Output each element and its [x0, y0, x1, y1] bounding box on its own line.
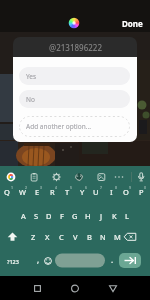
staticText: Done: [122, 18, 143, 29]
staticText: No: [26, 95, 35, 104]
staticText: I: [110, 187, 113, 197]
staticText: Y: [80, 187, 85, 197]
staticText: Add another option...: [26, 122, 91, 131]
staticText: E: [35, 187, 40, 197]
staticText: P: [139, 187, 144, 197]
button[interactable]: [105, 280, 121, 296]
staticText: U: [93, 187, 99, 197]
staticText: 0: [144, 185, 147, 190]
staticText: 3: [40, 185, 43, 190]
staticText: 1: [11, 185, 14, 190]
staticText: ?123: [7, 258, 19, 265]
staticText: 9: [129, 185, 132, 190]
staticText: O: [123, 187, 129, 197]
staticText: Q: [4, 187, 10, 197]
staticText: .: [111, 254, 114, 265]
staticText: Z: [31, 232, 36, 242]
staticText: S: [34, 211, 39, 221]
staticText: 4: [55, 185, 58, 190]
button[interactable]: [119, 253, 141, 268]
staticText: 6: [85, 185, 88, 190]
staticText: 8: [115, 185, 118, 190]
staticText: Yes: [26, 72, 37, 81]
staticText: T: [65, 187, 70, 197]
staticText: 7: [100, 185, 103, 190]
button[interactable]: Yes: [19, 67, 130, 85]
staticText: W: [19, 187, 26, 197]
staticText: ,: [37, 254, 40, 265]
staticText: K: [112, 211, 117, 221]
staticText: D: [46, 211, 52, 221]
staticText: @2131896222: [49, 42, 102, 53]
staticText: N: [100, 232, 106, 242]
staticText: R: [50, 187, 55, 197]
staticText: M: [114, 232, 121, 242]
staticText: 2: [25, 185, 28, 190]
staticText: F: [60, 211, 64, 221]
staticText: X: [45, 232, 50, 242]
button[interactable]: [67, 280, 83, 296]
button[interactable]: [55, 253, 105, 268]
button[interactable]: [27, 280, 43, 296]
staticText: A: [21, 211, 26, 221]
staticText: C: [59, 232, 64, 242]
staticText: L: [125, 211, 129, 221]
staticText: J: [100, 211, 103, 221]
button[interactable]: Done: [118, 15, 146, 31]
staticText: G: [72, 211, 78, 221]
button[interactable]: No: [19, 90, 130, 108]
staticText: 5: [70, 185, 73, 190]
staticText: B: [87, 232, 92, 242]
staticText: V: [73, 232, 78, 242]
button[interactable]: Add another option...: [19, 116, 130, 137]
staticText: H: [85, 211, 91, 221]
